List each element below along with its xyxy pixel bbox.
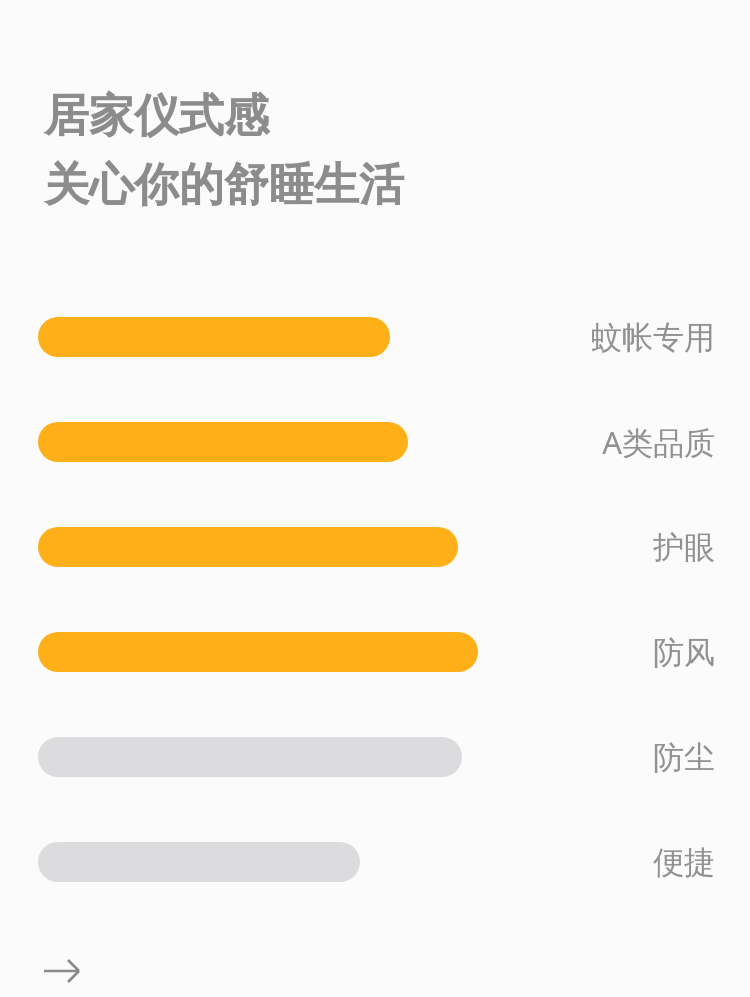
button[interactable]: Next bbox=[36, 948, 88, 994]
button[interactable]: 防尘 bbox=[395, 732, 715, 782]
button[interactable]: 便捷 bbox=[395, 837, 715, 887]
staticText: 防风 bbox=[653, 633, 715, 672]
button[interactable]: 居家仪式感 关心你的舒睡生活 bbox=[44, 88, 644, 213]
button[interactable]: 蚊帐专用 bbox=[38, 317, 390, 357]
button[interactable]: 防风 bbox=[395, 627, 715, 677]
staticText: 护眼 bbox=[653, 528, 715, 567]
button[interactable]: 蚊帐专用 bbox=[395, 312, 715, 362]
staticText: 蚊帐专用 bbox=[591, 318, 715, 357]
button[interactable]: 护眼 bbox=[395, 522, 715, 572]
staticText: 便捷 bbox=[653, 843, 715, 882]
button[interactable]: A类品质 bbox=[395, 417, 715, 467]
button[interactable]: 便捷 bbox=[38, 842, 360, 882]
staticText: A类品质 bbox=[602, 421, 715, 463]
button[interactable]: 护眼 bbox=[38, 527, 458, 567]
button[interactable]: 防尘 bbox=[38, 737, 462, 777]
button[interactable]: 防风 bbox=[38, 632, 478, 672]
staticText: 居家仪式感 关心你的舒睡生活 bbox=[44, 88, 404, 213]
staticText: 防尘 bbox=[653, 738, 715, 777]
button[interactable]: A类品质 bbox=[38, 422, 408, 462]
